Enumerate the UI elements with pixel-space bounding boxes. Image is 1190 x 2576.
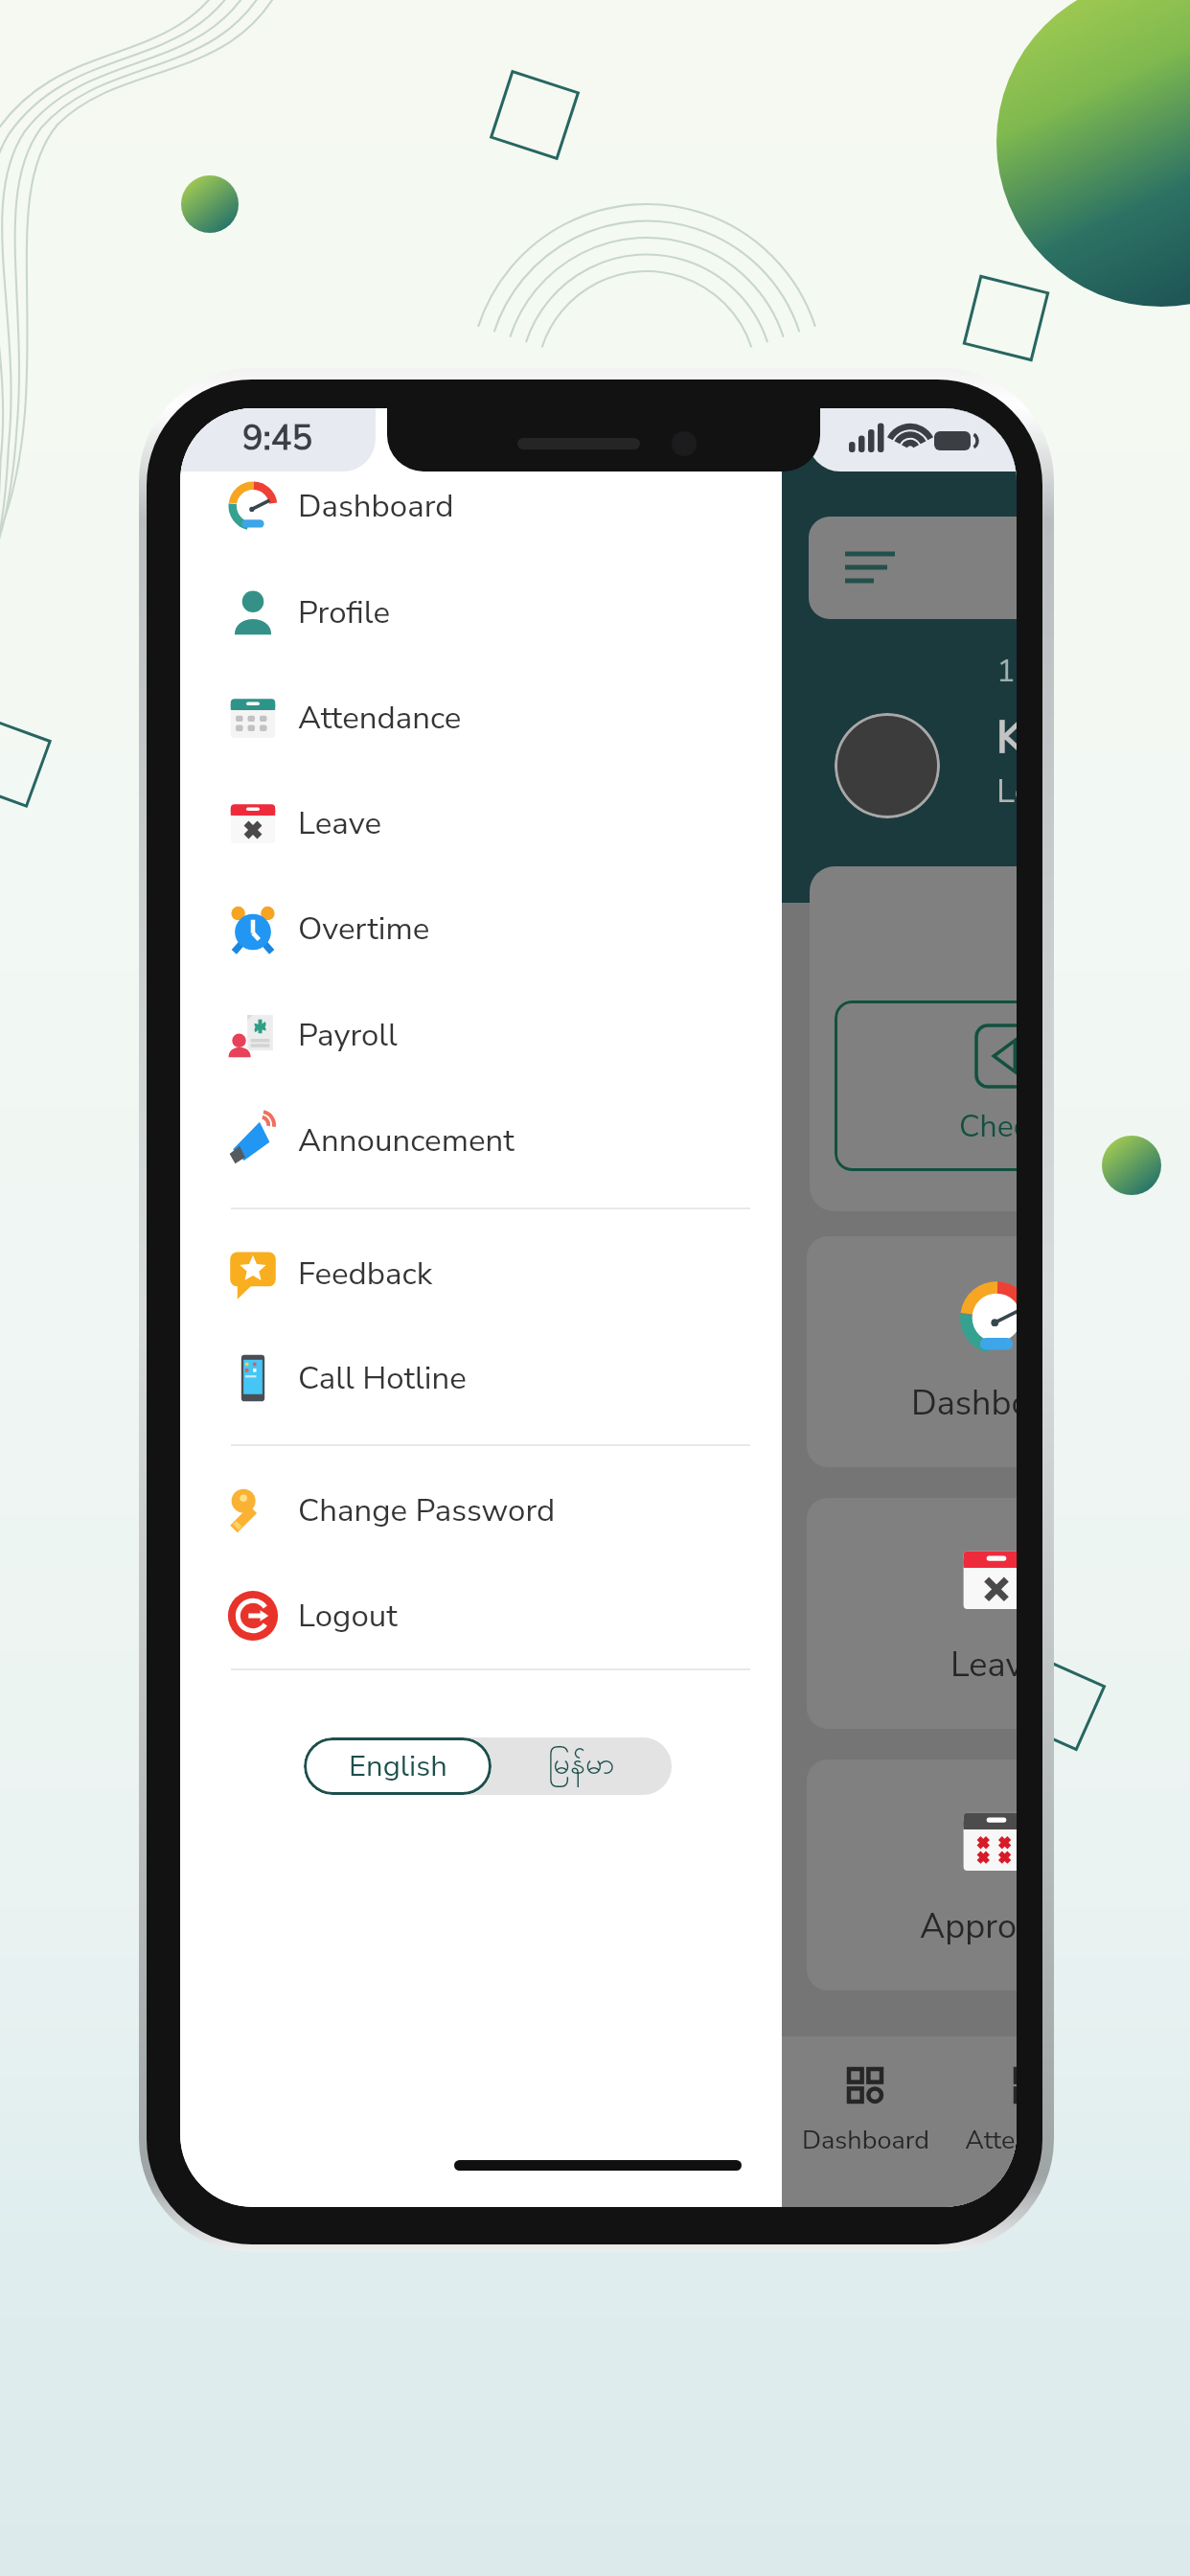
button[interactable]: Dashboard xyxy=(180,453,782,559)
staticText: Approved xyxy=(920,1903,1017,1950)
button[interactable]: English xyxy=(304,1737,492,1795)
staticText: Attendance xyxy=(965,2123,1017,2158)
staticText: English xyxy=(349,1746,447,1786)
staticText: Feedback xyxy=(298,1253,433,1296)
button[interactable]: Payroll xyxy=(180,982,782,1088)
button[interactable]: Open navigation menu xyxy=(809,517,1017,619)
button[interactable]: Attendance xyxy=(949,2036,1017,2207)
staticText: Dashboard xyxy=(298,485,454,528)
button[interactable]: Overtime xyxy=(180,876,782,981)
button[interactable]: Change Password xyxy=(180,1458,782,1563)
button[interactable]: Dashboard xyxy=(807,1236,1017,1467)
staticText: Lorem Ipsum xyxy=(996,769,1017,815)
button[interactable]: Approved xyxy=(807,1759,1017,1990)
staticText: Call Hotline xyxy=(298,1357,467,1400)
button[interactable]: Feedback xyxy=(180,1221,782,1326)
staticText: မြန်မာ xyxy=(548,1744,615,1788)
staticText: Logout xyxy=(298,1595,398,1638)
button[interactable]: Call Hotline xyxy=(180,1325,782,1431)
button[interactable]: Dashboard xyxy=(782,2036,949,2207)
button[interactable]: Leave xyxy=(180,770,782,876)
button[interactable]: Leave xyxy=(807,1498,1017,1729)
staticText: Payroll xyxy=(298,1014,398,1057)
staticText: Kyaw Kyaw xyxy=(996,707,1017,768)
staticText: Overtime xyxy=(298,908,430,951)
button[interactable]: Profile xyxy=(180,560,782,665)
staticText: 9:45 xyxy=(242,415,313,462)
button[interactable]: Attendance xyxy=(180,665,782,770)
staticText: Announcement xyxy=(298,1119,515,1162)
staticText: Leave xyxy=(950,1642,1017,1689)
staticText: Change Password xyxy=(298,1489,556,1532)
staticText: Attendance xyxy=(298,697,462,740)
staticText: Dashboard xyxy=(911,1380,1017,1427)
staticText: Dashboard xyxy=(802,2123,929,2158)
button[interactable]: Check In xyxy=(835,1000,1017,1171)
button[interactable]: မြန်မာ xyxy=(492,1737,672,1795)
button[interactable]: Announcement xyxy=(180,1088,782,1193)
staticText: Leave xyxy=(298,802,381,845)
button[interactable]: Logout xyxy=(180,1563,782,1668)
staticText: Check In xyxy=(959,1106,1017,1148)
staticText: Profile xyxy=(298,591,390,634)
staticText: 10 : 30 : 25 xyxy=(996,650,1017,693)
